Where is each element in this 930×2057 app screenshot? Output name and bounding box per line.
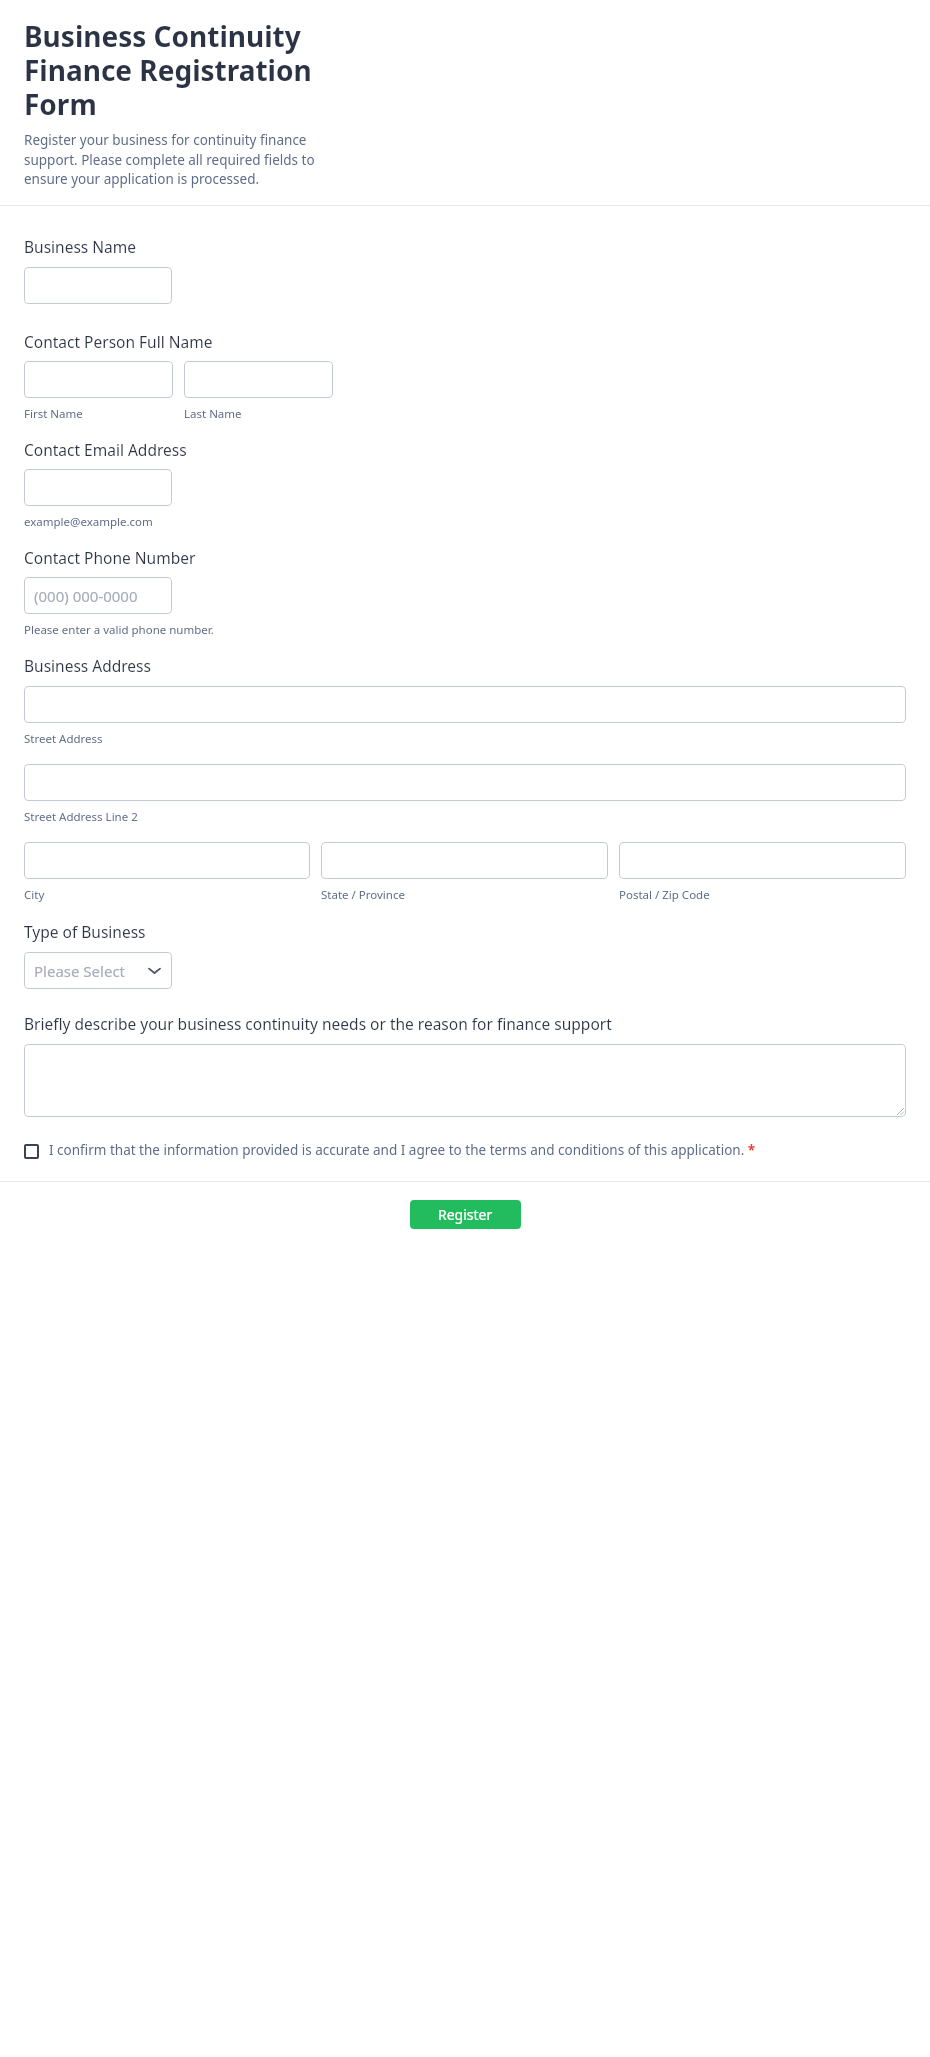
staticText: Register your business for continuity fi…: [24, 131, 324, 188]
staticText: Business Continuity Finance Registration…: [24, 17, 329, 123]
staticText: (000) 000-0000: [34, 586, 138, 606]
staticText: Contact Person Full Name: [24, 331, 213, 352]
staticText: Last Name: [184, 406, 242, 422]
staticText: City: [24, 887, 45, 903]
staticText: Business Address: [24, 655, 151, 676]
button[interactable]: [619, 842, 906, 879]
button[interactable]: [24, 1044, 906, 1117]
button[interactable]: [24, 361, 173, 398]
staticText: Street Address: [24, 731, 103, 747]
staticText: I confirm that the information provided …: [49, 1141, 756, 1159]
button[interactable]: [24, 267, 172, 304]
staticText: Contact Phone Number: [24, 547, 196, 568]
staticText: Please Select: [34, 961, 126, 981]
button[interactable]: Please Select: [24, 952, 172, 989]
button[interactable]: [184, 361, 333, 398]
button[interactable]: [24, 842, 310, 879]
staticText: State / Province: [321, 887, 405, 903]
staticText: First Name: [24, 406, 83, 422]
button[interactable]: Register: [410, 1200, 521, 1229]
button[interactable]: [321, 842, 608, 879]
button[interactable]: Confirm terms checkbox: [24, 1141, 906, 1159]
staticText: Postal / Zip Code: [619, 887, 710, 903]
staticText: Register: [438, 1205, 493, 1224]
button[interactable]: [24, 469, 172, 506]
staticText: Briefly describe your business continuit…: [24, 1013, 612, 1034]
button[interactable]: [24, 686, 906, 723]
staticText: Please enter a valid phone number.: [24, 622, 214, 638]
staticText: Type of Business: [24, 921, 146, 942]
staticText: Street Address Line 2: [24, 809, 138, 825]
other: Confirm terms checkbox: [24, 1144, 39, 1159]
staticText: Business Name: [24, 236, 136, 257]
button[interactable]: (000) 000-0000: [24, 577, 172, 614]
button[interactable]: [24, 764, 906, 801]
staticText: example@example.com: [24, 514, 153, 530]
staticText: Contact Email Address: [24, 439, 187, 460]
